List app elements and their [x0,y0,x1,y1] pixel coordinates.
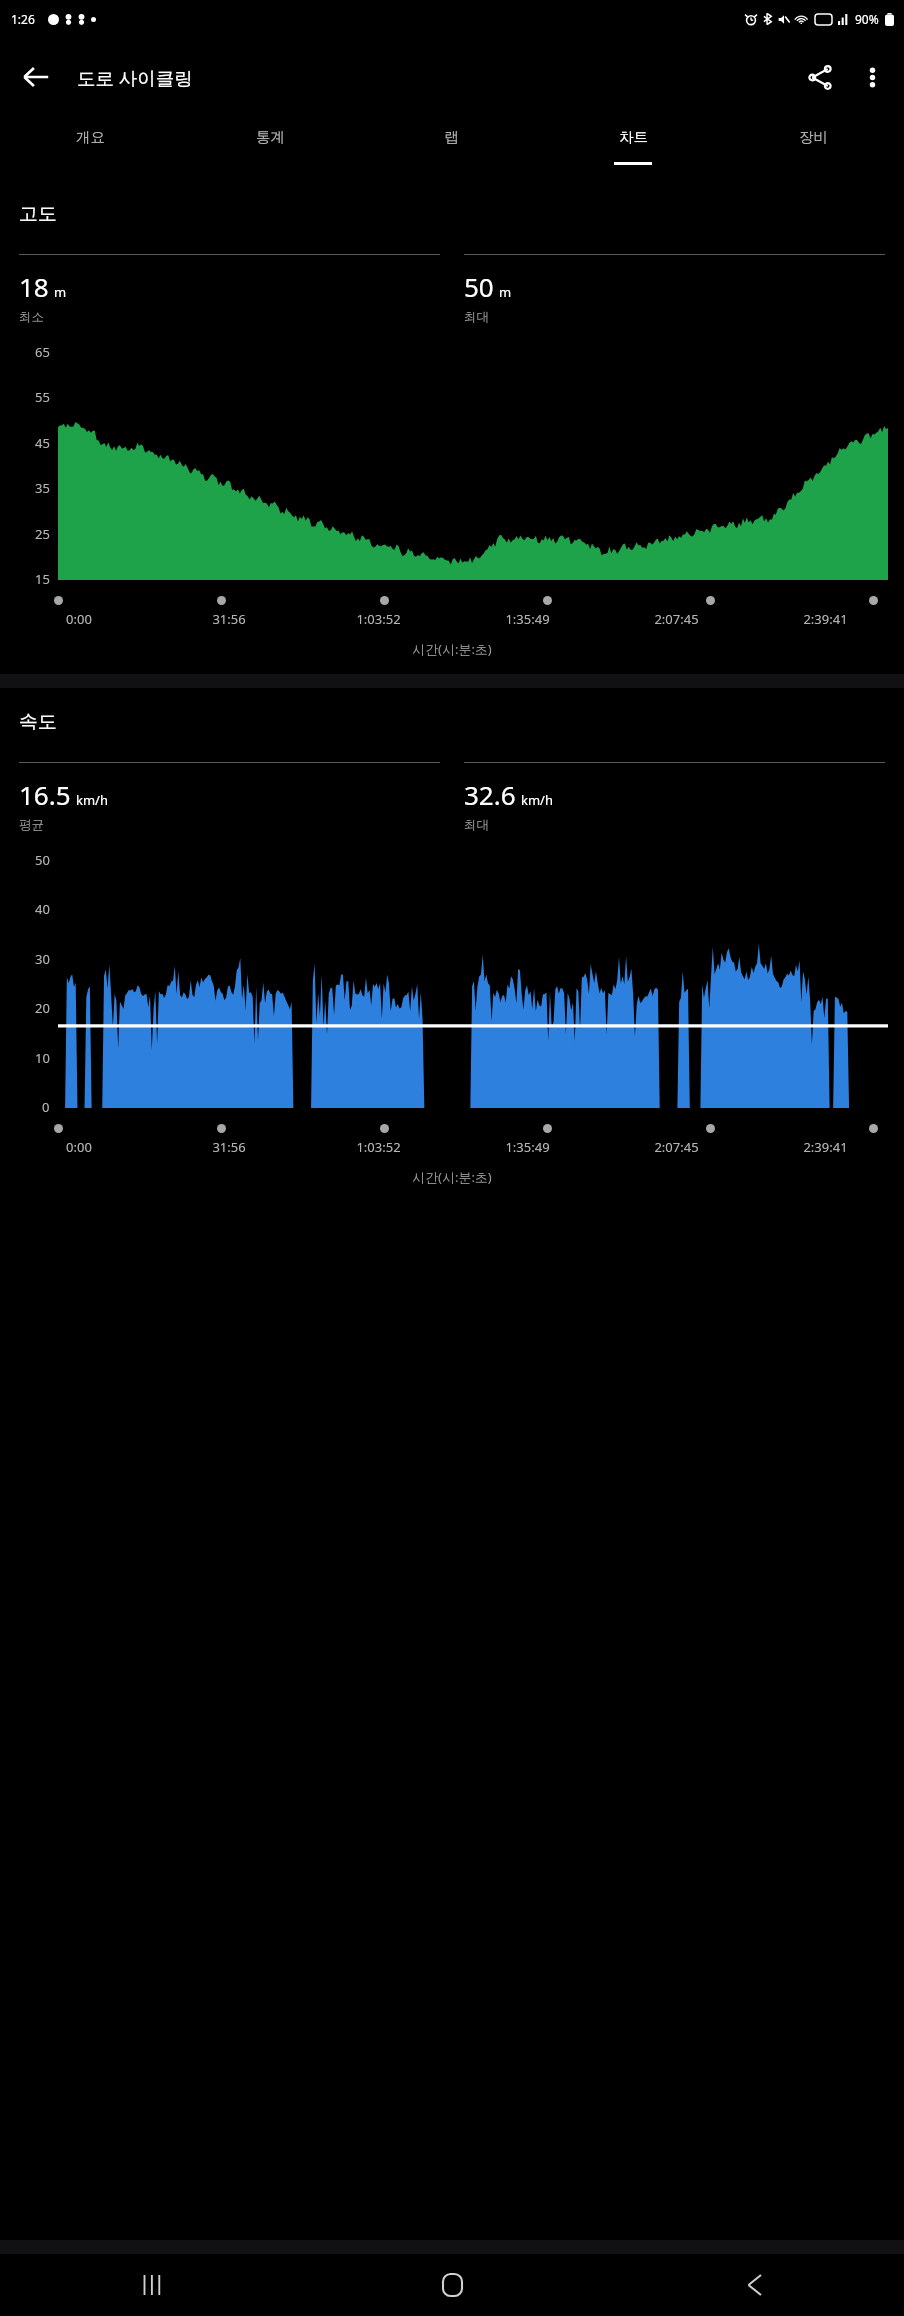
staticText: km/h [521,791,553,809]
staticText: m [499,283,512,301]
staticText: 50 [35,851,50,869]
staticText: 40 [35,900,50,918]
button[interactable]: More options [846,51,898,103]
staticText: 고도 [19,202,57,226]
staticText: 25 [35,525,50,543]
staticText: 장비 [799,128,828,146]
staticText: 1:35:49 [505,1138,550,1156]
staticText: 0:00 [66,610,92,628]
staticText: 최대 [464,817,489,833]
staticText: 1:03:52 [356,1138,401,1156]
staticText: 1:03:52 [356,610,401,628]
staticText: 32.6 [464,777,516,812]
staticText: 시간(시:분:초) [412,640,492,658]
staticText: 개요 [76,128,105,146]
staticText: km/h [76,791,108,809]
staticText: 1:26 [11,11,35,27]
button[interactable]: Back [603,2254,904,2316]
staticText: 차트 [619,128,648,146]
staticText: 속도 [19,710,57,734]
button[interactable]: 랩 [361,116,542,180]
staticText: 0:00 [66,1138,92,1156]
staticText: 통계 [256,128,285,146]
staticText: 랩 [444,128,459,146]
staticText: 평균 [19,817,44,833]
staticText: 31:56 [212,610,246,628]
staticText: 90% [855,11,879,27]
staticText: 2:07:45 [654,1138,699,1156]
staticText: 65 [35,343,50,361]
staticText: 30 [35,950,50,968]
staticText: 0 [42,1098,50,1116]
staticText: 10 [35,1049,50,1067]
staticText: 최소 [19,309,44,325]
button[interactable]: Recent apps [0,2254,302,2316]
staticText: 15 [35,570,50,588]
staticText: 최대 [464,309,489,325]
staticText: 45 [35,434,50,452]
staticText: 31:56 [212,1138,246,1156]
staticText: 2:07:45 [654,610,699,628]
button[interactable]: Home [302,2254,603,2316]
staticText: 18 [19,269,49,304]
button[interactable]: Back [10,51,62,103]
staticText: 시간(시:분:초) [412,1168,492,1186]
staticText: 1:35:49 [505,610,550,628]
staticText: 2:39:41 [803,1138,848,1156]
staticText: 50 [464,269,494,304]
staticText: 35 [35,479,50,497]
button[interactable]: Share [794,51,846,103]
button[interactable]: 통계 [180,116,361,180]
staticText: 도로 사이클링 [77,65,193,90]
staticText: 55 [35,388,50,406]
staticText: 2:39:41 [803,610,848,628]
staticText: m [54,283,67,301]
staticText: 20 [35,999,50,1017]
button[interactable]: 장비 [723,116,904,180]
button[interactable]: 개요 [0,116,180,180]
staticText: 16.5 [19,777,71,812]
button[interactable]: 차트 [542,116,723,180]
